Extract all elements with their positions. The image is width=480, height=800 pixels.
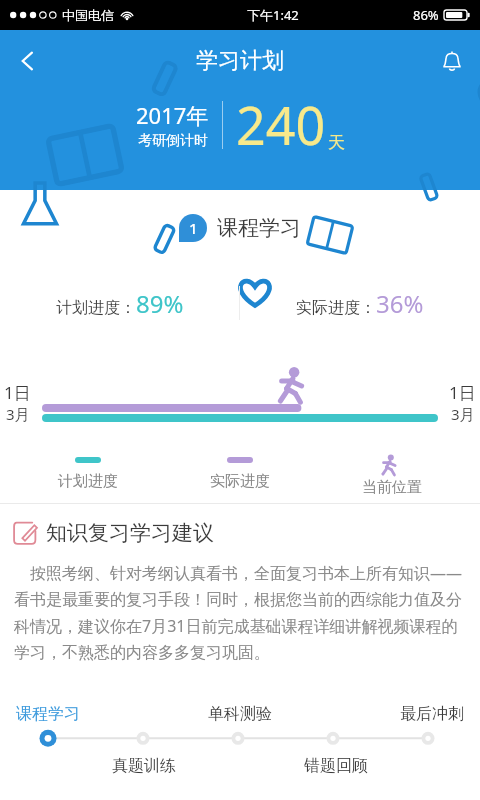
staticText: 下午1:42 [247,6,299,24]
button[interactable]: Back [0,33,56,89]
button[interactable]: 单科测验 [192,704,288,782]
staticText: 1日 [4,381,31,404]
staticText: 考研倒计时 [138,132,208,150]
staticText: 86% [413,6,439,24]
staticText: 36% [376,287,424,320]
staticText: 真题训练 [112,756,176,776]
staticText: 3月 [6,404,30,424]
staticText: 实际进度： [296,298,376,318]
button[interactable]: 错题回顾 [288,704,384,782]
staticText: 学习计划 [196,47,284,75]
staticText: 计划进度 [58,472,118,491]
staticText: 天 [328,132,345,153]
staticText: 错题回顾 [304,756,368,776]
staticText: 89% [136,287,184,320]
staticText: 按照考纲、针对考纲认真看书，全面复习书本上所有知识——看书是最重要的复习手段！同… [14,562,466,663]
staticText: 知识复习学习建议 [46,520,214,546]
staticText: 1 [189,218,198,238]
staticText: 当前位置 [362,478,422,497]
staticText: 中国电信 [62,7,114,23]
button[interactable]: 当前位置 [362,454,422,497]
button[interactable]: 实际进度 [210,454,270,491]
button[interactable]: 课程学习 [0,704,96,782]
button[interactable]: 最后冲刺 [384,704,480,782]
button[interactable]: 计划进度 [58,454,118,491]
staticText: 2017年 [136,100,209,130]
staticText: 实际进度 [210,472,270,491]
staticText: 计划进度： [56,298,136,318]
staticText: 单科测验 [208,704,272,724]
staticText: 1日 [449,381,476,404]
staticText: 240 [236,89,326,160]
button[interactable]: 真题训练 [96,704,192,782]
button[interactable]: Notifications [424,33,480,89]
staticText: 最后冲刺 [400,704,464,724]
staticText: 课程学习 [217,215,301,241]
staticText: 课程学习 [16,704,80,724]
staticText: 3月 [451,404,475,424]
